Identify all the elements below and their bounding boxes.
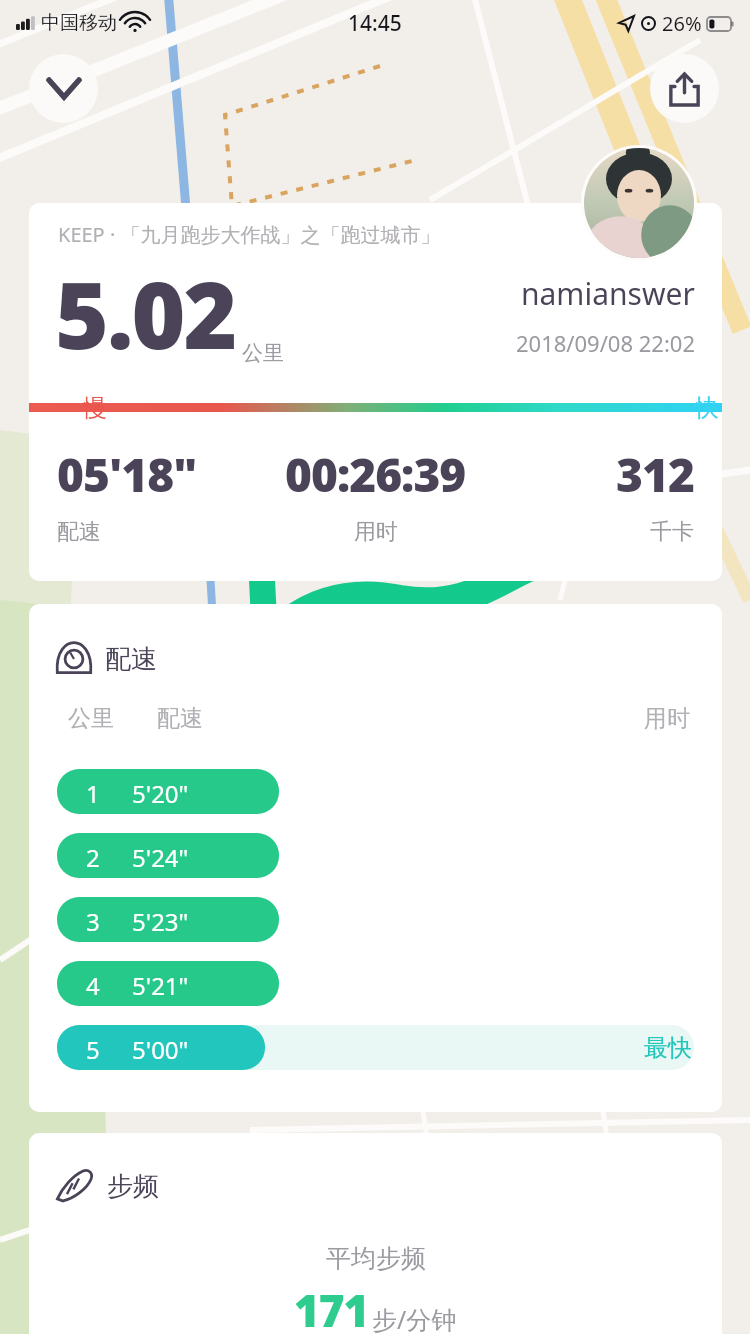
staticText: 步/分钟 [372, 1302, 457, 1334]
staticText: 171 [294, 1280, 369, 1334]
staticText: 配速 [105, 643, 157, 676]
staticText: 公里 [68, 704, 114, 733]
staticText: 5'23" [132, 905, 189, 938]
staticText: 5'20" [132, 777, 189, 810]
staticText: 5.02 [55, 251, 236, 376]
staticText: namianswer [521, 273, 695, 314]
staticText: 05'18" [57, 443, 197, 506]
staticText: 312 [616, 443, 694, 506]
staticText: 中国移动 [41, 11, 117, 35]
staticText: 5'00" [132, 1033, 189, 1066]
staticText: 5 [86, 1033, 100, 1066]
button[interactable]: 1 [57, 769, 722, 814]
staticText: 14:45 [348, 9, 402, 38]
staticText: 用时 [644, 704, 690, 733]
staticText: 3 [86, 905, 100, 938]
button[interactable]: 4 [57, 961, 722, 1006]
button[interactable]: 2 [57, 833, 722, 878]
staticText: 00:26:39 [285, 443, 466, 506]
button[interactable]: Share [650, 54, 719, 123]
staticText: 平均步频 [326, 1243, 426, 1274]
staticText: 2018/09/08 22:02 [516, 328, 695, 358]
staticText: 5'24" [132, 841, 189, 874]
staticText: 千卡 [650, 518, 694, 546]
button[interactable]: 配速 [29, 604, 722, 1112]
staticText: 1 [86, 777, 100, 810]
staticText: 5'21" [132, 969, 189, 1002]
staticText: 4 [86, 969, 100, 1002]
staticText: 步频 [107, 1170, 159, 1203]
button[interactable]: 3 [57, 897, 722, 942]
staticText: 26% [662, 10, 702, 37]
staticText: 用时 [354, 518, 398, 546]
button[interactable]: KEEP · 「九月跑步大作战」之「跑过城市」 [29, 203, 722, 581]
button[interactable]: 5 [57, 1025, 722, 1070]
staticText: 快 [695, 393, 719, 423]
staticText: KEEP · 「九月跑步大作战」之「跑过城市」 [58, 221, 441, 248]
staticText: 公里 [242, 340, 284, 366]
button[interactable]: Collapse [29, 54, 98, 123]
staticText: 最快 [644, 1033, 692, 1063]
staticText: 配速 [157, 704, 203, 733]
staticText: 慢 [83, 393, 107, 423]
staticText: 2 [86, 841, 100, 874]
button[interactable]: Profile photo [584, 148, 694, 258]
staticText: 配速 [57, 518, 101, 546]
button[interactable]: 步频 [29, 1133, 722, 1334]
